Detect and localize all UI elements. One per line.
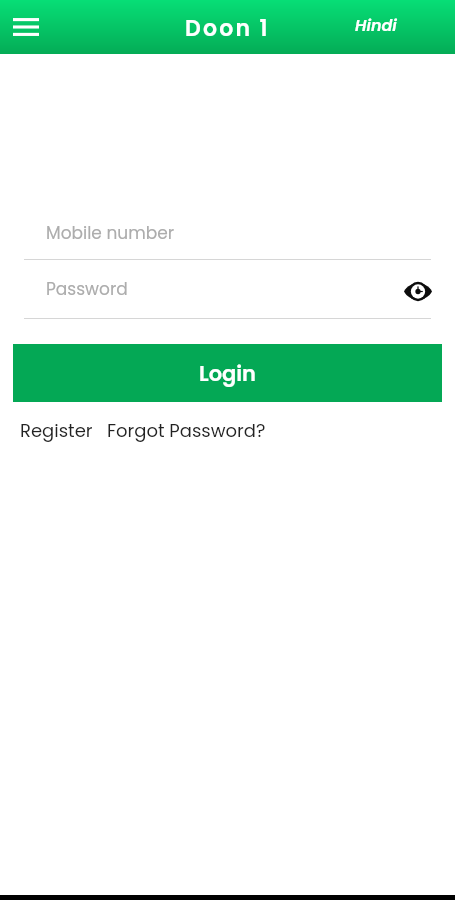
button[interactable]: Register (20, 418, 93, 443)
staticText: Forgot Password? (107, 418, 266, 443)
staticText: Register (20, 418, 93, 443)
staticText: Doon 1 (185, 13, 270, 44)
button[interactable]: Show password (401, 274, 435, 308)
button[interactable]: Password (24, 273, 431, 318)
button[interactable]: Login (13, 344, 442, 402)
button[interactable]: Hindi (355, 14, 397, 36)
staticText: Login (199, 359, 256, 388)
button[interactable]: Open navigation menu (1, 2, 51, 52)
staticText: Hindi (355, 14, 397, 36)
button[interactable]: Mobile number (24, 214, 431, 259)
staticText: Password (46, 277, 128, 301)
staticText: Mobile number (46, 221, 175, 245)
button[interactable]: Forgot Password? (107, 418, 266, 443)
